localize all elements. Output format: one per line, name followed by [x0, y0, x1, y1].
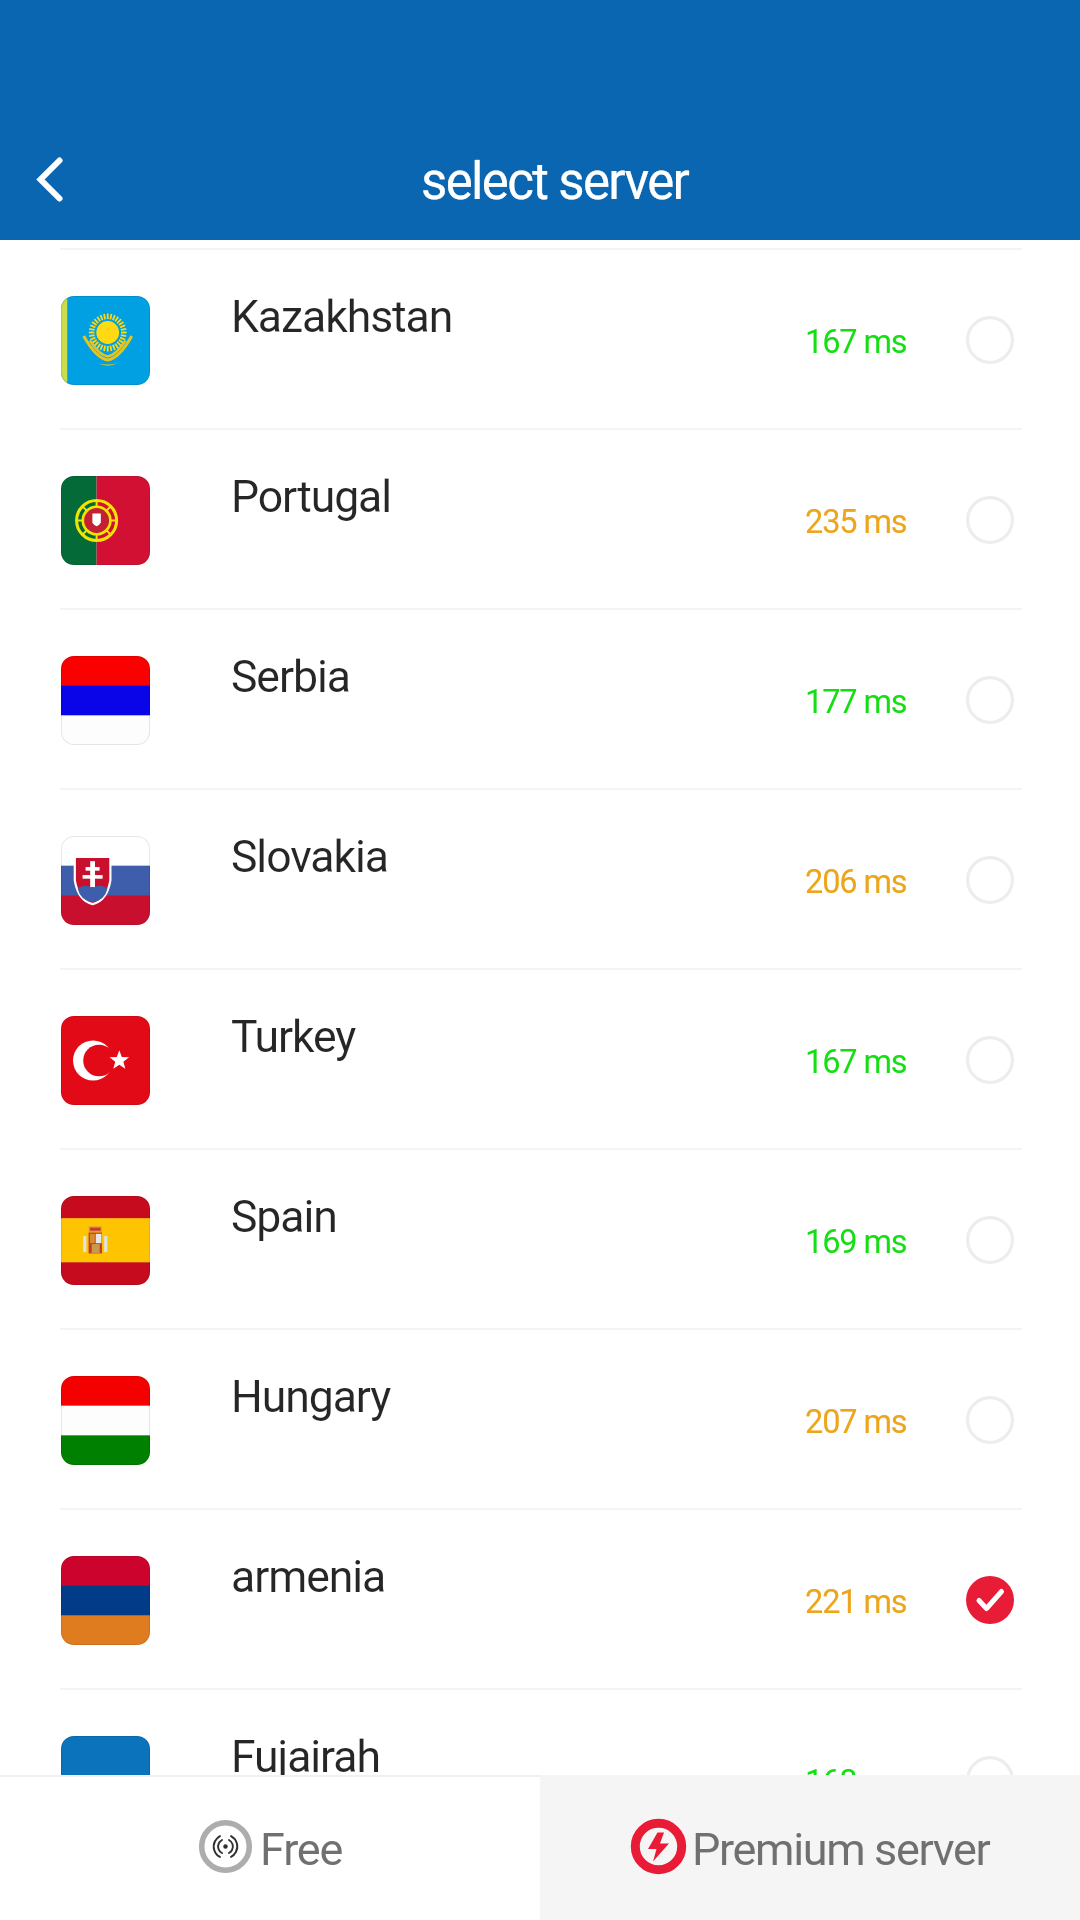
- staticText: Hungary: [231, 1371, 391, 1423]
- button[interactable]: Select Spain: [966, 1216, 1014, 1264]
- staticText: 207 ms: [805, 1403, 907, 1441]
- button[interactable]: Kazakhstan: [0, 250, 1080, 430]
- button[interactable]: Select Slovakia: [966, 856, 1014, 904]
- staticText: Serbia: [231, 651, 350, 703]
- button[interactable]: Premium server: [540, 1775, 1080, 1920]
- staticText: 168 ms: [805, 1763, 907, 1801]
- staticText: Portugal: [231, 471, 392, 523]
- button[interactable]: Fujairah: [0, 1690, 1080, 1870]
- button[interactable]: Serbia: [0, 610, 1080, 790]
- staticText: Fujairah: [231, 1731, 380, 1783]
- staticText: 206 ms: [805, 863, 907, 901]
- staticText: 177 ms: [805, 683, 907, 721]
- staticText: 167 ms: [805, 1043, 907, 1081]
- button[interactable]: Back: [0, 120, 120, 240]
- button[interactable]: Select Kazakhstan: [966, 316, 1014, 364]
- button[interactable]: armenia: [0, 1510, 1080, 1690]
- button[interactable]: Spain: [0, 1150, 1080, 1330]
- button[interactable]: Selected server armenia: [966, 1576, 1014, 1624]
- staticText: Spain: [231, 1191, 337, 1243]
- staticText: armenia: [231, 1551, 386, 1603]
- staticText: 169 ms: [805, 1223, 907, 1261]
- button[interactable]: Free: [0, 1775, 540, 1920]
- staticText: 167 ms: [805, 323, 907, 361]
- button[interactable]: Select Fujairah: [966, 1756, 1014, 1804]
- staticText: 221 ms: [805, 1583, 907, 1621]
- button[interactable]: Slovakia: [0, 790, 1080, 970]
- button[interactable]: Turkey: [0, 970, 1080, 1150]
- button[interactable]: Select Turkey: [966, 1036, 1014, 1084]
- button[interactable]: Select Hungary: [966, 1396, 1014, 1444]
- staticText: 235 ms: [805, 503, 907, 541]
- button[interactable]: Select Serbia: [966, 676, 1014, 724]
- staticText: Free: [260, 1823, 343, 1876]
- staticText: Premium server: [692, 1823, 990, 1876]
- button[interactable]: Portugal: [0, 430, 1080, 610]
- staticText: Kazakhstan: [231, 291, 453, 343]
- staticText: Turkey: [231, 1011, 356, 1063]
- staticText: select server: [421, 152, 689, 212]
- staticText: Slovakia: [231, 831, 388, 883]
- button[interactable]: Select Portugal: [966, 496, 1014, 544]
- button[interactable]: Hungary: [0, 1330, 1080, 1510]
